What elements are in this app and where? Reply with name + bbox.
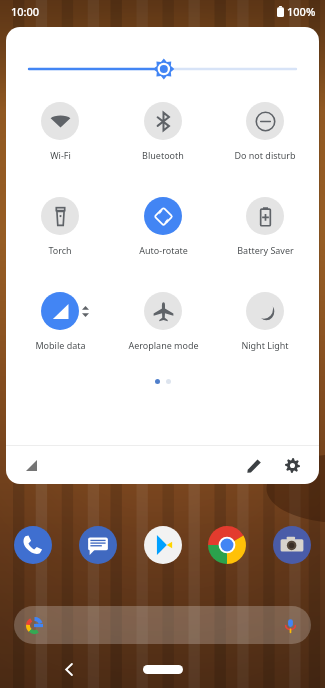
staticText: Wi-Fi [50,149,71,161]
staticText: Auto-rotate [139,244,188,256]
button[interactable]: Play Store [142,524,184,566]
button[interactable]: Back [56,656,82,682]
button[interactable]: Camera [271,524,313,566]
button[interactable]: Wi-Fi [11,102,109,161]
staticText: Mobile data [35,339,86,351]
staticText: Bluetooth [142,149,184,161]
button[interactable]: Phone [12,524,54,566]
button[interactable]: Home [143,665,183,674]
staticText: Aeroplane mode [128,339,199,351]
button[interactable]: Night Light [216,292,314,351]
staticText: 10:00 [11,4,40,19]
button[interactable]: Battery Saver [216,197,314,256]
button[interactable]: Do not disturb [216,102,314,161]
button[interactable]: Torch [11,197,109,256]
button[interactable]: Auto-rotate [114,197,212,256]
button[interactable]: Settings [279,452,305,478]
staticText: Night Light [241,339,289,351]
staticText: Battery Saver [237,244,294,256]
button[interactable]: Bluetooth [114,102,212,161]
button[interactable]: Chrome [206,524,248,566]
button[interactable]: Messages [77,524,119,566]
button[interactable]: Brightness [29,58,296,80]
button[interactable]: Edit [241,452,267,478]
staticText: 100% [287,4,316,19]
button[interactable]: Search [14,606,311,644]
button[interactable]: Mobile data [11,292,109,351]
staticText: Torch [48,244,72,256]
staticText: Do not disturb [234,149,296,161]
button[interactable]: Signal [20,454,42,476]
button[interactable]: Aeroplane mode [114,292,212,351]
